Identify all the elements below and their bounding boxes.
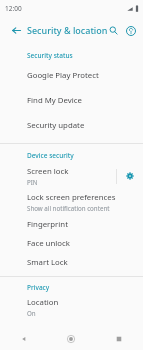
button[interactable]: Recent apps	[95, 328, 143, 350]
button[interactable]: Screen lock settings	[117, 163, 143, 189]
button[interactable]: Face unlock	[0, 234, 143, 253]
staticText: Security & location	[27, 24, 108, 36]
staticText: Face unlock	[27, 238, 70, 249]
staticText: Show all notification content	[27, 204, 110, 212]
button[interactable]: Security update	[0, 113, 143, 138]
button[interactable]: Location	[0, 295, 143, 319]
button[interactable]: Search	[106, 23, 121, 38]
staticText: Smart Lock	[27, 257, 68, 268]
staticText: On	[27, 309, 36, 317]
button[interactable]: Help	[123, 23, 138, 38]
staticText: Google Play Protect	[27, 70, 99, 81]
staticText: Fingerprint	[27, 219, 68, 230]
staticText: Device security	[27, 151, 74, 160]
staticText: Security update	[27, 120, 85, 131]
button[interactable]: Google Play Protect	[0, 63, 143, 88]
button[interactable]: Home	[47, 328, 95, 350]
staticText: Find My Device	[27, 95, 82, 106]
button[interactable]: Smart Lock	[0, 253, 143, 272]
button[interactable]: Find My Device	[0, 88, 143, 113]
button[interactable]: Back	[0, 328, 47, 350]
staticText: 12:00	[5, 4, 22, 13]
staticText: Location	[27, 297, 59, 308]
button[interactable]: Back	[9, 23, 23, 37]
staticText: PIN	[27, 178, 38, 186]
staticText: Screen lock	[27, 166, 69, 177]
staticText: Lock screen preferences	[27, 192, 116, 203]
button[interactable]: Lock screen preferences	[0, 189, 143, 215]
staticText: Privacy	[27, 283, 50, 292]
staticText: Security status	[27, 51, 73, 60]
button[interactable]: Fingerprint	[0, 215, 143, 234]
button[interactable]: Screen lock	[0, 163, 116, 189]
